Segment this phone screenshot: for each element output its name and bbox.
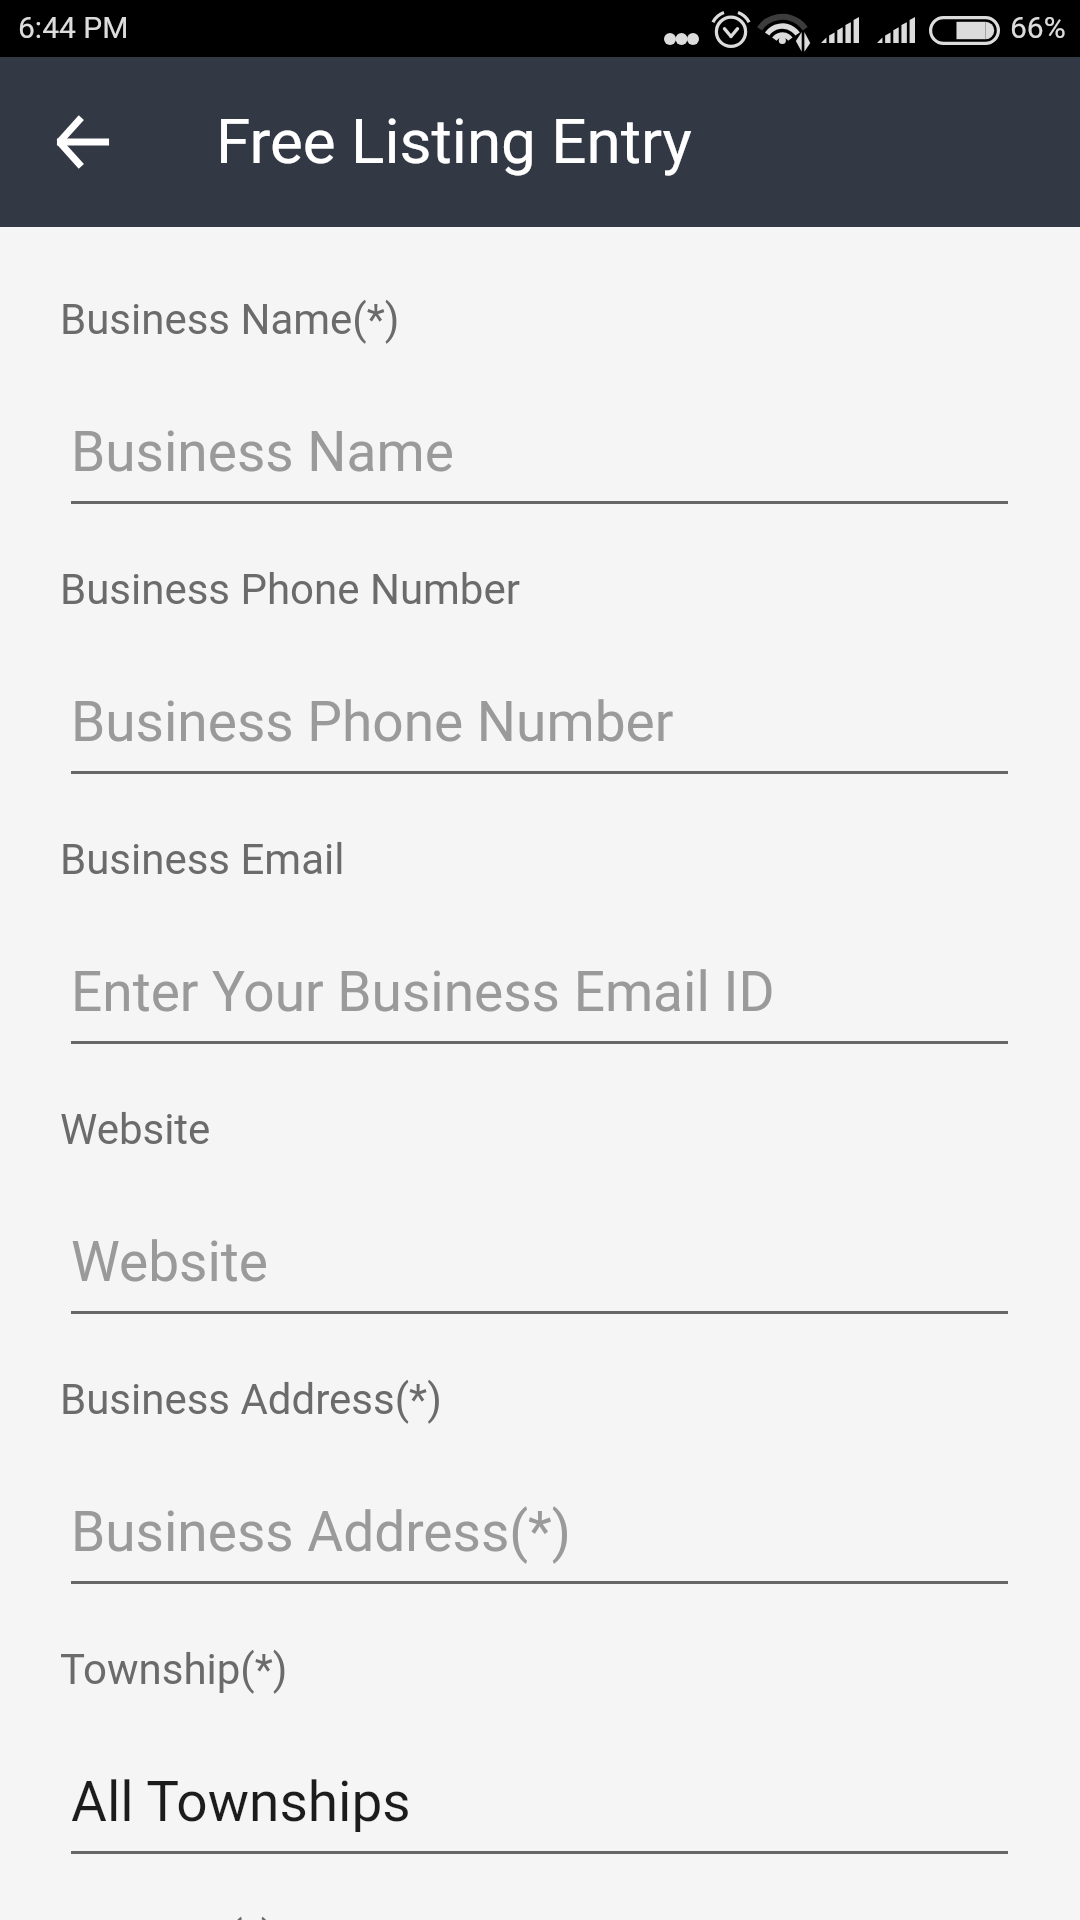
staticText: Business Address(*) (71, 1500, 571, 1564)
staticText: 66% (1010, 10, 1066, 45)
button[interactable]: Business Email (71, 830, 1008, 1052)
staticText: Category(*) (60, 1912, 276, 1920)
button[interactable]: Business Address(*) (71, 1370, 1008, 1592)
staticText: Business Address(*) (60, 1375, 442, 1424)
staticText: Business Email (60, 835, 345, 884)
button[interactable]: Township(*) (71, 1640, 1008, 1862)
button[interactable]: Navigate up (26, 85, 140, 199)
staticText: Website (60, 1105, 211, 1154)
staticText: Township(*) (60, 1645, 288, 1694)
button[interactable]: Website (71, 1100, 1008, 1322)
staticText: Website (71, 1230, 268, 1294)
staticText: Business Name (71, 420, 454, 484)
staticText: Business Name(*) (60, 295, 400, 344)
button[interactable]: Business Phone Number (71, 560, 1008, 782)
staticText: 6:44 PM (18, 10, 129, 45)
button[interactable]: Business Name(*) (71, 290, 1008, 512)
staticText: Enter Your Business Email ID (71, 960, 775, 1024)
staticText: Free Listing Entry (216, 105, 692, 178)
staticText: Business Phone Number (71, 690, 674, 754)
staticText: Business Phone Number (60, 565, 520, 614)
staticText: All Townships (71, 1770, 411, 1834)
button[interactable]: Category(*) (71, 1910, 1008, 1920)
